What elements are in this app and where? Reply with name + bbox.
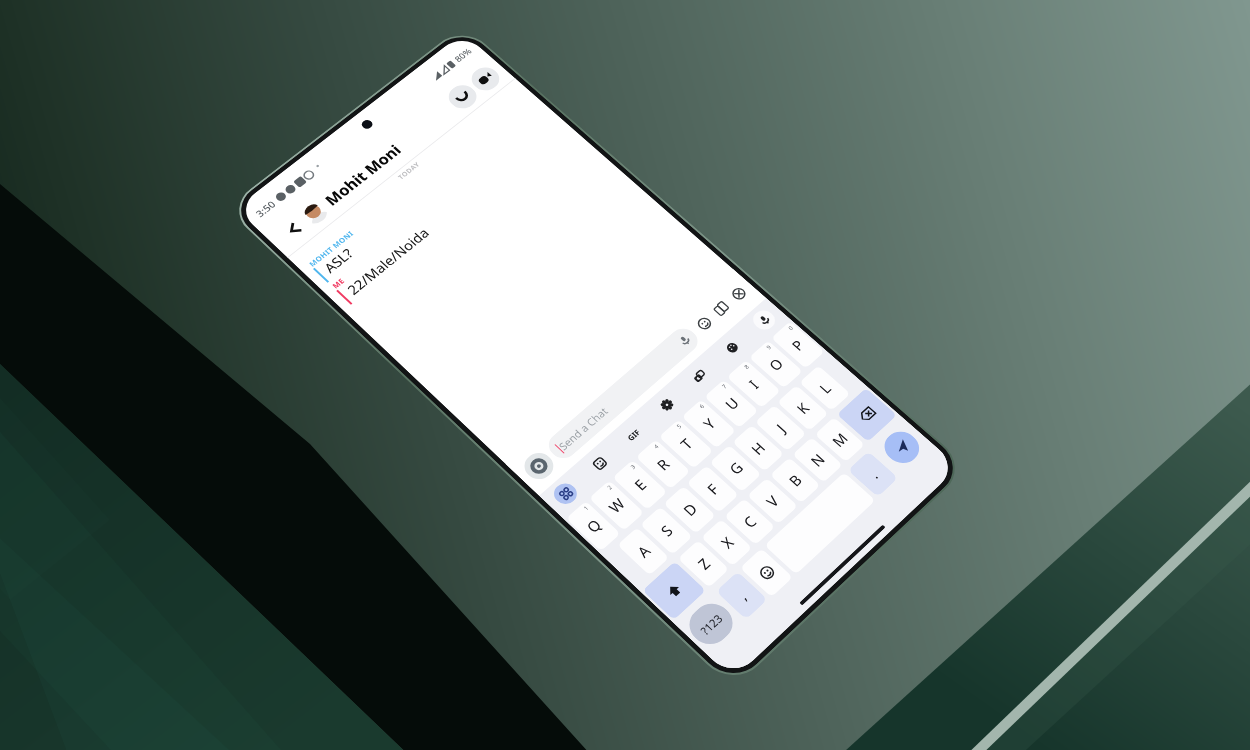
staticText: 6 [698,402,706,410]
button[interactable]: Z [678,540,729,588]
button[interactable]: G [709,445,762,492]
staticText: ?123 [697,611,726,638]
staticText: W [604,494,629,517]
button[interactable]: GIF [617,420,649,448]
button[interactable]: Voice input [749,306,779,334]
button[interactable]: Themes [717,334,748,361]
button[interactable]: , [716,571,768,620]
staticText: L [815,379,835,397]
button[interactable]: Gallery [706,295,736,322]
button[interactable]: C [724,498,775,545]
button[interactable]: Send a Chat [543,324,703,463]
staticText: MOHIT MONI [306,228,356,268]
staticText: 2 [606,483,614,491]
staticText: G [725,458,747,478]
staticText: D [679,499,701,520]
staticText: , [733,588,751,604]
button[interactable]: U [704,379,759,428]
staticText: R [652,454,674,474]
staticText: 3 [629,463,638,471]
button[interactable]: Camera [519,448,559,484]
button[interactable]: N [792,437,843,483]
button[interactable] [764,472,876,575]
staticText: M [827,428,852,451]
staticText: 3:50 [252,198,278,220]
button[interactable]: S [640,506,693,555]
button[interactable]: P [771,321,825,369]
button[interactable]: Sticker [688,310,719,337]
button[interactable]: Emoji [740,548,793,597]
staticText: T [676,434,697,453]
button[interactable]: Video call [466,63,505,95]
staticText: 9 [765,343,773,351]
staticText: 8 [743,363,751,371]
button[interactable]: H [732,425,784,472]
staticText: 5 [675,422,684,430]
button[interactable]: Y [681,399,736,448]
button[interactable]: A [617,527,669,576]
button[interactable]: D [663,486,716,534]
staticText: Mohit Moni [320,140,406,210]
button[interactable]: M [814,417,865,462]
staticText: P [787,335,809,354]
button[interactable]: . [847,451,898,497]
staticText: H [746,438,770,458]
button[interactable]: L [799,365,851,411]
staticText: 22/Male/Noida [343,224,433,298]
button[interactable]: Settings [651,391,683,419]
staticText: 1 [582,504,591,512]
staticText: V [761,491,783,511]
staticText: ME [330,276,347,290]
button[interactable]: Q [566,501,621,551]
button[interactable]: J [755,405,806,451]
staticText: C [739,511,761,532]
staticText: E [630,475,651,494]
staticText: J [772,419,790,436]
button[interactable]: Stickers [584,449,616,478]
staticText: . [865,467,882,482]
staticText: Y [699,414,720,433]
staticText: 7 [720,383,729,390]
staticText: X [716,532,738,552]
staticText: 4 [652,442,661,450]
button[interactable]: Symbols [681,596,741,652]
button[interactable]: Translate [684,363,715,390]
button[interactable]: Call [443,80,482,113]
button[interactable] [837,388,897,442]
staticText: F [702,480,723,498]
staticText: N [806,449,829,470]
button[interactable]: E [612,460,667,510]
button[interactable]: F [686,465,739,513]
button[interactable]: V [747,478,798,524]
staticText: O [764,354,787,374]
button[interactable]: Send [877,425,926,469]
staticText: 80% [451,46,474,64]
staticText: Send a Chat [555,404,611,453]
staticText: S [656,520,677,540]
staticText: GIF [625,427,643,443]
staticText: I [744,376,763,392]
staticText: U [720,393,743,413]
staticText: A [632,541,655,561]
button[interactable]: T [659,419,713,469]
button[interactable]: K [777,385,829,431]
button[interactable]: Back [278,216,309,242]
staticText: TODAY [396,160,422,181]
staticText: ASL? [320,244,357,276]
button[interactable]: W [589,480,644,531]
staticText: K [792,398,814,418]
button[interactable]: X [701,519,752,566]
staticText: Q [582,515,605,536]
button[interactable]: O [749,340,803,388]
button[interactable]: Close [723,280,754,307]
staticText: 0 [787,324,795,332]
staticText: B [784,470,806,490]
button[interactable]: I [726,360,781,408]
button[interactable]: R [635,439,691,489]
button[interactable]: Apps [549,479,581,508]
button[interactable]: B [770,457,821,503]
button[interactable] [642,561,706,620]
staticText: Z [693,553,715,573]
